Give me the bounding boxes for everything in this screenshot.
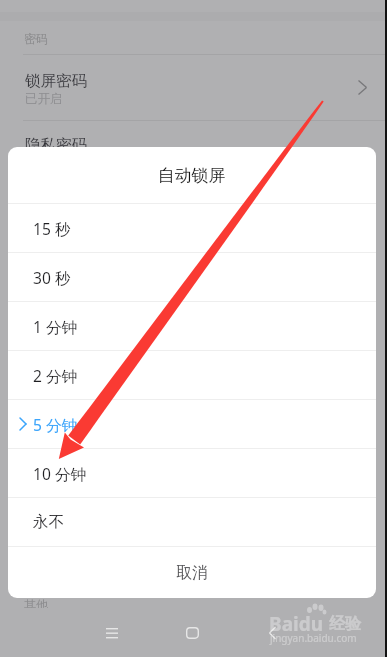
- button[interactable]: 取消: [8, 547, 376, 598]
- button[interactable]: Recent apps: [92, 608, 132, 657]
- staticText: 30 秒: [33, 267, 71, 288]
- button[interactable]: Home: [172, 608, 212, 657]
- button[interactable]: 2 分钟: [8, 351, 376, 399]
- staticText: 永不: [33, 512, 65, 532]
- staticText: 其他: [24, 597, 48, 612]
- staticText: 经验: [329, 614, 361, 634]
- button[interactable]: 30 秒: [8, 253, 376, 301]
- button[interactable]: 10 分钟: [8, 449, 376, 497]
- staticText: 锁屏密码: [25, 71, 87, 91]
- staticText: 隐私密码: [25, 135, 87, 155]
- staticText: 15 秒: [33, 218, 71, 239]
- button[interactable]: Back: [252, 608, 292, 657]
- button[interactable]: 永不: [8, 498, 376, 546]
- button[interactable]: 锁屏密码: [0, 55, 387, 120]
- staticText: 10 分钟: [33, 463, 87, 484]
- button[interactable]: 1 分钟: [8, 302, 376, 350]
- staticText: 已开启: [25, 91, 63, 107]
- button[interactable]: 15 秒: [8, 204, 376, 252]
- staticText: 密码: [24, 31, 48, 46]
- staticText: Baidu: [269, 611, 324, 637]
- staticText: 自动锁屏: [158, 165, 226, 186]
- staticText: 5 分钟: [33, 414, 78, 435]
- staticText: 取消: [176, 563, 208, 583]
- staticText: 2 分钟: [33, 365, 78, 386]
- button[interactable]: 5 分钟: [8, 400, 376, 448]
- staticText: 1 分钟: [33, 316, 78, 337]
- staticText: jingyan.baidu.com: [270, 631, 357, 645]
